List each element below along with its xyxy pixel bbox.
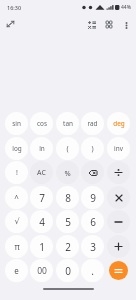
staticText: log [12,144,22,153]
staticText: AC [37,168,46,178]
button[interactable]: 2 [56,235,79,258]
button[interactable]: log [5,137,28,160]
button[interactable]: 3 [81,235,104,258]
staticText: ! [16,168,18,178]
button[interactable]: Plus [107,235,130,258]
button[interactable]: Minus [107,210,130,233]
button[interactable]: deg [107,112,130,135]
button[interactable]: ( [56,137,79,160]
staticText: cos [37,119,47,128]
button[interactable]: ) [81,137,104,160]
staticText: 0 [65,264,71,278]
button[interactable]: e [5,259,28,282]
staticText: 3 [90,240,96,254]
staticText: 1 [39,240,45,254]
button[interactable]: sin [5,112,28,135]
staticText: rad [87,119,98,128]
button[interactable]: 8 [56,186,79,209]
button[interactable]: Keypad layout [101,16,117,32]
staticText: ln [39,144,45,153]
button[interactable]: 5 [56,210,79,233]
button[interactable]: √ [5,210,28,233]
staticText: 5 [65,215,71,229]
button[interactable]: inv [107,137,130,160]
button[interactable]: % [56,161,79,184]
button[interactable]: Unit converter [84,17,100,33]
staticText: ) [91,144,94,154]
staticText: . [91,264,94,278]
staticText: inv [114,144,123,153]
staticText: 44% [121,4,131,11]
staticText: deg [113,119,125,128]
staticText: tan [63,119,73,128]
staticText: e [14,265,19,276]
button[interactable]: cos [30,112,53,135]
staticText: π [14,241,20,252]
button[interactable]: Equals [109,261,128,280]
button[interactable]: . [81,259,104,282]
button[interactable]: 9 [81,186,104,209]
staticText: 00 [37,265,47,277]
button[interactable]: 4 [30,210,53,233]
button[interactable]: Multiply [107,186,130,209]
button[interactable]: 6 [81,210,104,233]
staticText: 4 [39,215,45,229]
staticText: % [64,168,71,178]
button[interactable]: 1 [30,235,53,258]
button[interactable]: 0 [56,259,79,282]
staticText: ( [66,144,69,154]
button[interactable]: Backspace [81,161,104,184]
button[interactable]: ! [5,161,28,184]
button[interactable]: Divide [107,161,130,184]
staticText: 8 [65,191,71,205]
button[interactable]: tan [56,112,79,135]
staticText: 7 [39,191,45,205]
staticText: ^ [14,192,19,203]
button[interactable]: 00 [30,259,53,282]
staticText: 16:30 [7,4,22,11]
button[interactable]: 7 [30,186,53,209]
staticText: 2 [65,240,71,254]
staticText: √ [14,217,20,226]
button[interactable]: rad [81,112,104,135]
button[interactable]: π [5,235,28,258]
button[interactable]: Expand [2,16,18,32]
button[interactable]: ln [30,137,53,160]
button[interactable]: More options [118,17,134,33]
button[interactable]: ^ [5,186,28,209]
staticText: sin [12,119,21,128]
staticText: 6 [90,215,96,229]
button[interactable]: AC [30,161,53,184]
staticText: 9 [90,191,96,205]
